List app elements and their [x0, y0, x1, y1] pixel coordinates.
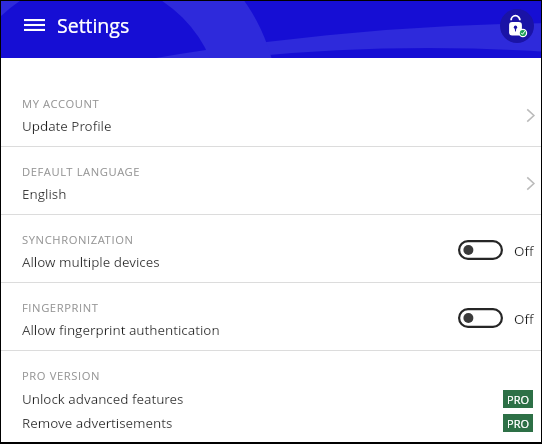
- button[interactable]: Open navigation menu: [14, 8, 54, 42]
- button[interactable]: Toggle SYNCHRONIZATION: [458, 240, 503, 260]
- button[interactable]: Unlock advanced features: [1, 387, 541, 411]
- button[interactable]: Remove advertisements: [1, 411, 541, 435]
- button[interactable]: MY ACCOUNT: [1, 79, 541, 146]
- staticText: Unlock advanced features: [22, 390, 184, 408]
- staticText: Update Profile: [22, 117, 112, 135]
- staticText: English: [22, 185, 67, 203]
- staticText: PRO: [507, 392, 529, 407]
- button[interactable]: Toggle FINGERPRINT: [458, 308, 503, 328]
- staticText: FINGERPRINT: [22, 300, 99, 315]
- button[interactable]: Security status: [500, 9, 534, 43]
- button[interactable]: SYNCHRONIZATION: [1, 215, 541, 282]
- button[interactable]: DEFAULT LANGUAGE: [1, 147, 541, 214]
- staticText: Settings: [57, 12, 130, 39]
- staticText: Off: [514, 310, 534, 328]
- staticText: MY ACCOUNT: [22, 96, 100, 111]
- button[interactable]: FINGERPRINT: [1, 283, 541, 350]
- staticText: Remove advertisements: [22, 414, 173, 432]
- staticText: Allow multiple devices: [22, 253, 160, 271]
- staticText: PRO: [507, 416, 529, 431]
- staticText: SYNCHRONIZATION: [22, 232, 134, 247]
- staticText: Off: [514, 242, 534, 260]
- staticText: PRO VERSION: [22, 368, 101, 383]
- staticText: Allow fingerprint authentication: [22, 321, 220, 339]
- staticText: DEFAULT LANGUAGE: [22, 164, 141, 179]
